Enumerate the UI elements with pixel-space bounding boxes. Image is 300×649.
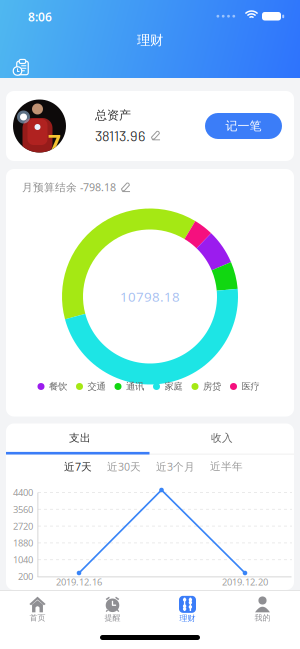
staticText: 近3个月	[156, 459, 195, 474]
staticText: 月预算结余 -798.18	[22, 180, 116, 194]
staticText: 200	[18, 570, 33, 583]
staticText: 房贷	[203, 381, 221, 392]
staticText: 4400	[13, 486, 33, 499]
staticText: 记一笔	[225, 119, 261, 133]
staticText: 我的	[254, 613, 270, 623]
staticText: 2019.12.20	[222, 576, 268, 588]
button[interactable]: 编辑月预算	[121, 182, 130, 192]
button[interactable]: 记一笔	[205, 113, 282, 139]
button[interactable]: 近半年	[210, 460, 243, 473]
staticText: 7	[48, 128, 61, 158]
staticText: 医疗	[241, 381, 259, 392]
button[interactable]: 记账	[0, 0, 27, 74]
staticText: 2720	[13, 520, 33, 532]
button[interactable]: 收入	[150, 423, 294, 452]
staticText: 交通	[87, 381, 105, 392]
staticText: 38113.96	[95, 127, 145, 144]
staticText: 近30天	[107, 459, 141, 474]
button[interactable]: 近30天	[107, 459, 141, 474]
staticText: 总资产	[95, 108, 131, 123]
staticText: 通讯	[126, 381, 144, 392]
staticText: 理财	[179, 613, 195, 623]
staticText: 10798.18	[120, 288, 180, 305]
staticText: 首页	[29, 613, 45, 623]
button[interactable]: 支出	[8, 423, 152, 452]
staticText: 餐饮	[49, 381, 67, 392]
button[interactable]: 我的	[225, 593, 300, 626]
button[interactable]: 理财	[150, 593, 225, 626]
staticText: 家庭	[164, 381, 182, 392]
staticText: 理财	[137, 32, 163, 48]
button[interactable]: 近3个月	[156, 459, 195, 474]
staticText: 8:06	[28, 9, 52, 25]
staticText: 近半年	[210, 460, 243, 473]
button[interactable]: 首页	[0, 593, 75, 626]
button[interactable]: 近7天	[64, 459, 92, 474]
button[interactable]: 编辑总资产	[151, 131, 160, 140]
staticText: 1040	[13, 553, 33, 566]
staticText: 2019.12.16	[56, 576, 102, 588]
staticText: 提醒	[104, 613, 120, 623]
staticText: 1880	[13, 537, 33, 549]
staticText: 支出	[69, 431, 91, 444]
staticText: 近7天	[64, 459, 92, 474]
staticText: 3560	[13, 503, 33, 515]
button[interactable]: 提醒	[75, 593, 150, 626]
staticText: 收入	[211, 431, 233, 444]
